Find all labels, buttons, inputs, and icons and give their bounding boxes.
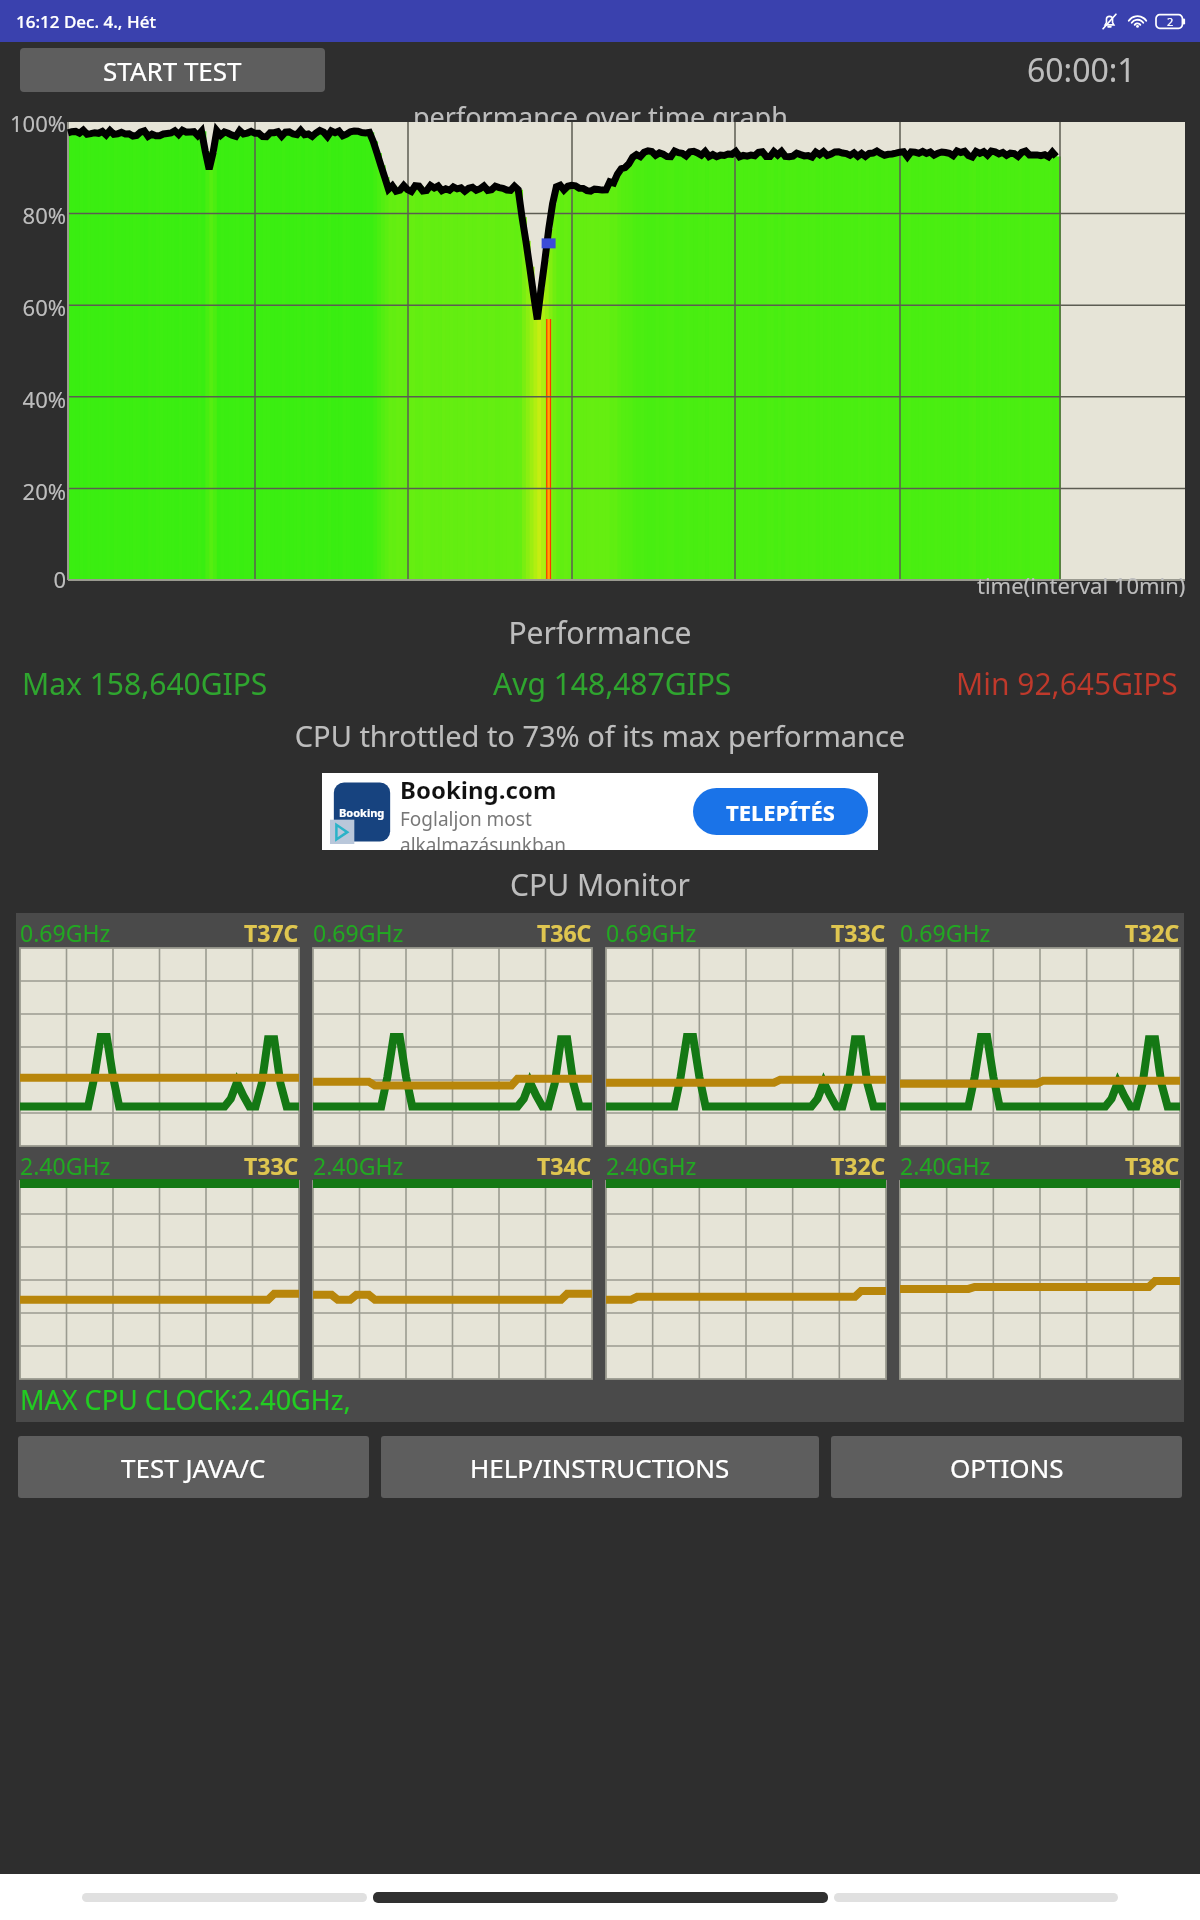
staticText: T38C — [1125, 1150, 1180, 1181]
staticText: 100% — [0, 108, 66, 138]
staticText: Booking — [339, 805, 385, 820]
staticText: OPTIONS — [950, 1450, 1064, 1485]
staticText: T32C — [831, 1150, 886, 1181]
staticText: 40% — [0, 384, 66, 414]
staticText: time(interval 10min) — [977, 570, 1186, 600]
staticText: Max 158,640GIPS — [22, 663, 268, 704]
staticText: T34C — [537, 1150, 592, 1181]
staticText: T33C — [244, 1150, 299, 1181]
staticText: Performance — [0, 612, 1200, 653]
staticText: 20% — [0, 476, 66, 506]
staticText: 2 — [1167, 14, 1174, 29]
staticText: 60:00:1 — [1027, 48, 1136, 92]
button[interactable]: OPTIONS — [831, 1436, 1182, 1498]
staticText: T37C — [244, 917, 299, 948]
button[interactable]: START TEST — [20, 48, 325, 92]
staticText: alkalmazásunkban — [400, 832, 567, 850]
staticText: 2.40GHz — [20, 1150, 111, 1181]
button[interactable]: HELP/INSTRUCTIONS — [381, 1436, 819, 1498]
staticText: performance over time graph — [413, 98, 788, 135]
staticText: 2.40GHz — [900, 1150, 991, 1181]
staticText: TELEPÍTÉS — [726, 797, 835, 827]
staticText: Foglaljon most — [400, 806, 532, 832]
staticText: 0.69GHz — [20, 917, 111, 948]
staticText: Avg 148,487GIPS — [493, 663, 732, 704]
staticText: TEST JAVA/C — [121, 1450, 266, 1485]
button[interactable]: Booking — [322, 773, 878, 850]
staticText: CPU throttled to 73% of its max performa… — [0, 716, 1200, 755]
staticText: 0 — [0, 564, 66, 594]
staticText: HELP/INSTRUCTIONS — [470, 1450, 730, 1485]
staticText: 16:12 Dec. 4., Hét — [16, 10, 156, 33]
staticText: 80% — [0, 200, 66, 230]
staticText: T36C — [537, 917, 592, 948]
staticText: CPU Monitor — [0, 864, 1200, 905]
button[interactable]: TEST JAVA/C — [18, 1436, 369, 1498]
staticText: T33C — [831, 917, 886, 948]
staticText: Min 92,645GIPS — [956, 663, 1178, 704]
staticText: 60% — [0, 292, 66, 322]
staticText: START TEST — [103, 53, 242, 88]
staticText: 0.69GHz — [606, 917, 697, 948]
staticText: T32C — [1125, 917, 1180, 948]
staticText: MAX CPU CLOCK:2.40GHz, — [20, 1381, 358, 1418]
button[interactable]: TELEPÍTÉS — [693, 788, 868, 835]
staticText: Booking.com — [400, 773, 557, 806]
staticText: 0.69GHz — [900, 917, 991, 948]
staticText: 0.69GHz — [313, 917, 404, 948]
staticText: 2.40GHz — [313, 1150, 404, 1181]
staticText: 2.40GHz — [606, 1150, 697, 1181]
